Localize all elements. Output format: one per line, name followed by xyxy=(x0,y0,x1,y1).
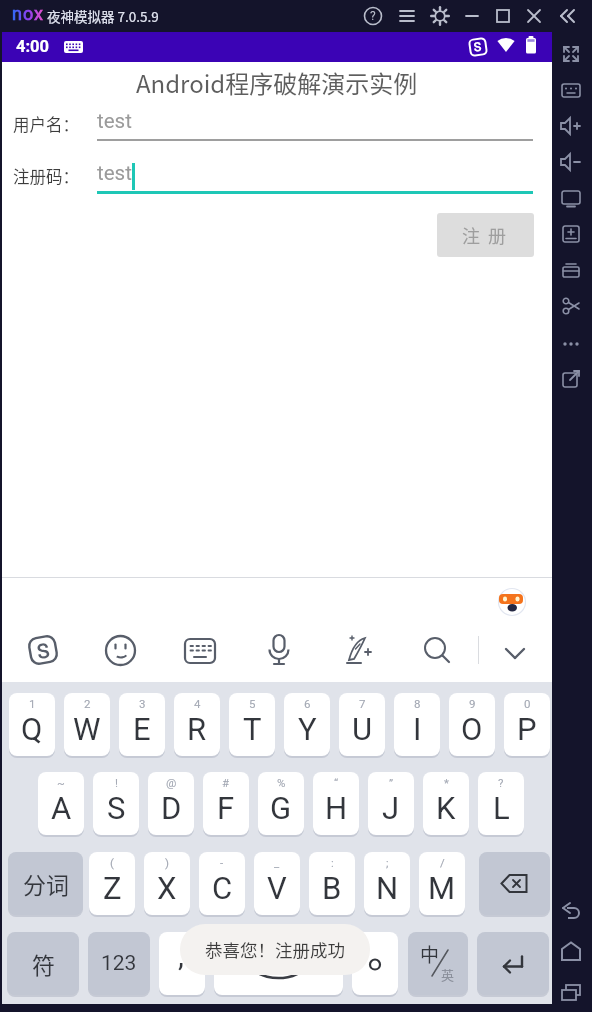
button[interactable]: @ xyxy=(148,772,194,835)
button[interactable] xyxy=(263,634,295,666)
staticText: R xyxy=(187,711,207,747)
staticText: test xyxy=(97,161,132,185)
staticText: A xyxy=(51,790,72,826)
button[interactable]: ! xyxy=(93,772,139,835)
button[interactable]: ; xyxy=(364,852,410,915)
button[interactable] xyxy=(429,5,451,27)
staticText: ! xyxy=(115,776,118,789)
button[interactable] xyxy=(559,982,583,1006)
button[interactable] xyxy=(492,5,514,27)
button[interactable] xyxy=(560,115,582,137)
staticText: B xyxy=(322,870,342,906)
staticText: T xyxy=(243,711,262,747)
button[interactable] xyxy=(560,187,582,209)
staticText: 9 xyxy=(469,697,476,710)
button[interactable]: 中 xyxy=(408,932,468,995)
button[interactable]: 0 xyxy=(504,693,550,756)
button[interactable]: 注 册 xyxy=(437,213,534,257)
staticText: 4 xyxy=(194,697,201,710)
staticText: 1 xyxy=(29,697,36,710)
button[interactable]: 分词 xyxy=(8,852,83,915)
button[interactable]: ? xyxy=(362,5,384,27)
staticText: Y xyxy=(298,711,317,747)
button[interactable] xyxy=(461,5,483,27)
staticText: L xyxy=(493,790,510,826)
staticText: 3 xyxy=(139,697,146,710)
staticText: Android程序破解演示实例 xyxy=(136,65,418,100)
button[interactable]: 符 xyxy=(7,932,79,995)
staticText: 符 xyxy=(32,947,55,980)
staticText: 5 xyxy=(249,697,256,710)
button[interactable] xyxy=(477,932,549,995)
staticText: H xyxy=(325,790,348,826)
staticText: 用户名： xyxy=(13,112,79,136)
button[interactable] xyxy=(497,588,527,618)
button[interactable]: 5 xyxy=(229,693,275,756)
staticText: 8 xyxy=(414,697,421,710)
button[interactable] xyxy=(560,223,582,245)
staticText: 123 xyxy=(101,951,137,976)
button[interactable]: ? xyxy=(478,772,524,835)
button[interactable] xyxy=(560,151,582,173)
button[interactable]: _ xyxy=(254,852,300,915)
staticText: @ xyxy=(166,776,177,789)
button[interactable]: % xyxy=(258,772,304,835)
button[interactable]: * xyxy=(423,772,469,835)
button[interactable]: 2 xyxy=(64,693,110,756)
button[interactable] xyxy=(560,295,582,317)
button[interactable] xyxy=(214,932,343,995)
button[interactable] xyxy=(559,940,583,964)
button[interactable]: : xyxy=(309,852,355,915)
button[interactable]: 9 xyxy=(449,693,495,756)
button[interactable]: ~ xyxy=(38,772,84,835)
staticText: 6 xyxy=(304,697,311,710)
button[interactable]: “ xyxy=(313,772,359,835)
button[interactable] xyxy=(560,333,582,355)
button[interactable]: , xyxy=(159,932,205,995)
button[interactable] xyxy=(557,5,579,27)
button[interactable]: ” xyxy=(368,772,414,835)
button[interactable]: 1 xyxy=(9,693,55,756)
staticText: 7 xyxy=(359,697,366,710)
button[interactable]: 3 xyxy=(119,693,165,756)
staticText: nox xyxy=(12,3,44,24)
button[interactable]: 4 xyxy=(174,693,220,756)
button[interactable] xyxy=(352,932,398,995)
button[interactable] xyxy=(560,43,582,65)
button[interactable] xyxy=(421,634,453,666)
staticText: D xyxy=(161,790,182,826)
button[interactable]: / xyxy=(419,852,465,915)
button[interactable]: S xyxy=(23,630,63,670)
staticText: “ xyxy=(334,776,339,789)
button[interactable] xyxy=(523,5,545,27)
staticText: W xyxy=(73,711,101,747)
button[interactable] xyxy=(479,852,550,915)
button[interactable]: 6 xyxy=(284,693,330,756)
staticText: , xyxy=(178,938,184,973)
button[interactable] xyxy=(342,634,374,666)
staticText: C xyxy=(212,870,233,906)
button[interactable] xyxy=(559,900,583,924)
button[interactable] xyxy=(560,259,582,281)
staticText: # xyxy=(222,776,230,789)
button[interactable]: ( xyxy=(89,852,135,915)
staticText: Q xyxy=(21,711,43,747)
button[interactable] xyxy=(560,368,582,390)
staticText: I xyxy=(413,711,422,747)
button[interactable]: - xyxy=(199,852,245,915)
button[interactable]: 8 xyxy=(394,693,440,756)
button[interactable] xyxy=(184,637,216,669)
staticText: Z xyxy=(103,870,122,906)
staticText: ; xyxy=(386,856,389,869)
button[interactable] xyxy=(396,5,418,27)
staticText: 夜神模拟器 7.0.5.9 xyxy=(47,6,159,26)
staticText: 注册码： xyxy=(13,164,79,188)
button[interactable] xyxy=(560,79,582,101)
button[interactable]: 123 xyxy=(88,932,150,995)
button[interactable]: 7 xyxy=(339,693,385,756)
button[interactable] xyxy=(104,634,137,667)
button[interactable] xyxy=(500,638,530,668)
staticText: S xyxy=(107,790,126,826)
button[interactable]: # xyxy=(203,772,249,835)
button[interactable]: ) xyxy=(144,852,190,915)
